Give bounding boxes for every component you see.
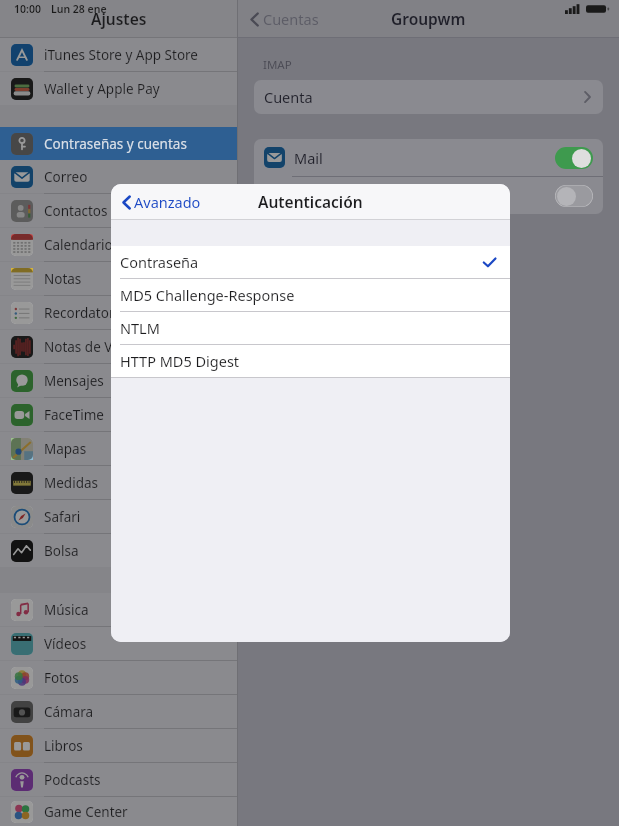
button[interactable]: Mail [254,139,603,176]
button[interactable]: Notas [0,262,238,295]
staticText: Contactos [44,202,108,220]
staticText: Notas de Voz [44,338,127,356]
button[interactable]: Mail activado [555,147,593,169]
button[interactable]: Safari [0,500,238,533]
button[interactable]: Vídeos [0,627,238,660]
staticText: IMAP [263,57,292,73]
staticText: NTLM [120,318,160,338]
button[interactable]: Mapas [0,432,238,465]
button[interactable]: Game Center [0,797,238,826]
staticText: Groupwm [391,8,466,29]
staticText: FaceTime [44,406,104,424]
button[interactable]: Contraseñas y cuentas [0,127,238,160]
button[interactable]: Contactos [0,194,238,227]
button[interactable]: Notas [254,177,603,214]
staticText: HTTP MD5 Digest [120,351,240,371]
staticText: Mail [294,148,323,168]
staticText: Calendario [44,236,113,254]
staticText: Notas [294,186,335,206]
button[interactable]: Libros [0,729,238,762]
button[interactable]: Cuenta [254,80,603,114]
button[interactable]: Bolsa [0,534,238,567]
staticText: Cuentas [263,9,319,29]
staticText: Cámara [44,703,94,721]
staticText: Vídeos [44,635,87,653]
staticText: Medidas [44,474,98,492]
staticText: Ajustes [91,8,147,29]
button[interactable]: NTLM [111,312,510,344]
button[interactable]: Mensajes [0,364,238,397]
staticText: Avanzado [134,192,201,212]
staticText: Game Center [44,803,128,821]
button[interactable]: Notas de Voz [0,330,238,363]
staticText: 10:00 [14,2,41,16]
button[interactable]: Calendario [0,228,238,261]
staticText: Autenticación [258,191,363,212]
button[interactable]: iTunes Store y App Store [0,38,238,71]
button[interactable]: HTTP MD5 Digest [111,345,510,377]
staticText: Correo [44,168,88,186]
staticText: iTunes Store y App Store [44,46,198,64]
button[interactable]: Avanzado, atrás [119,187,204,217]
staticText: Notas [44,270,82,288]
button[interactable]: Wallet y Apple Pay [0,72,238,105]
button[interactable]: Correo [0,160,238,193]
staticText: Fotos [44,669,79,687]
staticText: Lun 28 ene [51,2,107,16]
button[interactable]: Notas activado [555,185,593,207]
button[interactable]: FaceTime [0,398,238,431]
button[interactable]: MD5 Challenge-Response [111,279,510,311]
staticText: Wallet y Apple Pay [44,80,160,98]
staticText: Contraseña [120,252,199,272]
button[interactable]: Contraseña [111,246,510,278]
staticText: Música [44,601,89,619]
button[interactable]: Podcasts [0,763,238,796]
staticText: Mensajes [44,372,104,390]
staticText: Recordatorios [44,304,133,322]
button[interactable]: Cuentas, atrás [248,5,321,33]
staticText: Libros [44,737,83,755]
staticText: Bolsa [44,542,79,560]
staticText: Contraseñas y cuentas [44,135,187,153]
staticText: MD5 Challenge-Response [120,285,295,305]
button[interactable]: Cámara [0,695,238,728]
staticText: Cuenta [264,87,313,107]
button[interactable]: Recordatorios [0,296,238,329]
staticText: Safari [44,508,81,526]
staticText: Mapas [44,440,87,458]
button[interactable]: Música [0,593,238,626]
button[interactable]: Fotos [0,661,238,694]
staticText: Podcasts [44,771,101,789]
button[interactable]: Medidas [0,466,238,499]
